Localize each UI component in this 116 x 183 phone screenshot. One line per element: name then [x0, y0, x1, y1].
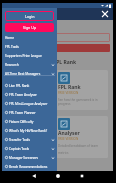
button[interactable]: Transfer Tools [2, 135, 57, 144]
button[interactable]: Bench Recommendations [2, 162, 57, 171]
button[interactable]: FPL Rank [56, 70, 108, 110]
staticText: FPL Rank [58, 84, 81, 91]
staticText: metrics [58, 151, 69, 155]
button[interactable]: Sign Up [5, 23, 54, 32]
staticText: Home [5, 36, 55, 40]
staticText: What's My Hit/New Rank? [9, 129, 55, 133]
button[interactable]: FPL Team Planner [2, 108, 57, 117]
staticText: FREE VERSION [58, 91, 79, 95]
button[interactable]: Live FPL Rank [2, 81, 57, 90]
staticText: Analyser [58, 130, 80, 137]
staticText: FPL Team Analyser [9, 93, 55, 97]
staticText: Live FPL Rank [42, 59, 77, 66]
staticText: Live FPL Rank [9, 84, 55, 88]
staticText: Research [5, 63, 51, 67]
staticText: Transfer Tools [9, 138, 51, 142]
button[interactable]: Manager Screeners [2, 153, 57, 162]
staticText: See how the gameweek is in progress [58, 98, 108, 106]
staticText: Detailed breakdown of team [58, 144, 98, 148]
staticText: Bench Recommendations [9, 165, 55, 169]
button[interactable]: Captain Tools [2, 144, 57, 153]
button[interactable]: Analyser [56, 116, 108, 158]
button[interactable]: All-Time Best Managers [2, 69, 57, 78]
button[interactable]: Back [31, 173, 37, 179]
button[interactable] [5, 44, 110, 52]
button[interactable]: FPL Mini-League Analyser [2, 99, 57, 108]
button[interactable]: FPL Tools [2, 42, 57, 51]
button[interactable]: FPL Team Analyser [2, 90, 57, 99]
button[interactable]: Recent apps [79, 173, 85, 179]
button[interactable]: Research [2, 60, 57, 69]
staticText: Sign Up [23, 25, 37, 30]
button[interactable]: Home [2, 33, 57, 42]
staticText: Fixture Difficulty [9, 120, 55, 124]
button[interactable]: Login [5, 11, 54, 21]
button[interactable]: Home [55, 173, 61, 179]
button[interactable]: Fixture Difficulty [2, 117, 57, 126]
button[interactable]: Supporters Prize League [2, 51, 57, 60]
staticText: Login [25, 14, 35, 19]
button[interactable]: What's My Hit/New Rank? [2, 126, 57, 135]
staticText: FPL Mini-League Analyser [9, 102, 55, 106]
staticText: All-Time Best Managers [5, 72, 51, 76]
button[interactable]: Close navigation drawer [99, 8, 111, 20]
button[interactable] [5, 33, 110, 42]
staticText: Supporters Prize League [5, 54, 55, 58]
staticText: FREE VERSION [58, 137, 79, 141]
staticText: Captain Tools [9, 147, 51, 151]
staticText: FPL Team Planner [9, 111, 55, 115]
staticText: Manager Screeners [9, 156, 51, 160]
staticText: FPL Tools [5, 45, 55, 49]
